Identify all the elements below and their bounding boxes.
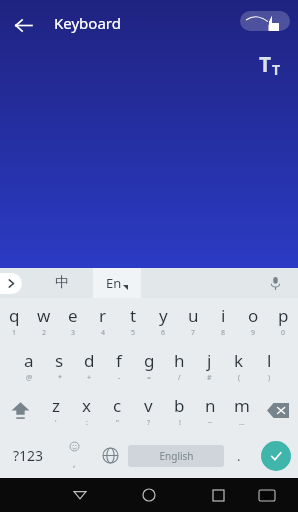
staticText: k — [234, 349, 244, 372]
button[interactable]: y — [148, 298, 178, 343]
button[interactable]: c — [102, 388, 133, 433]
staticText: d — [84, 349, 95, 372]
button[interactable]: Home — [129, 478, 169, 512]
staticText: ) — [268, 373, 271, 383]
staticText: T — [272, 60, 281, 79]
button[interactable]: b — [164, 388, 195, 433]
button[interactable]: h — [164, 343, 194, 388]
button[interactable]: m — [226, 388, 257, 433]
staticText: g — [144, 349, 155, 372]
staticText: + — [87, 373, 92, 383]
staticText: v — [144, 394, 153, 417]
button[interactable]: e — [58, 298, 88, 343]
button[interactable]: English — [128, 445, 224, 467]
button[interactable]: l — [254, 343, 284, 388]
staticText: z — [52, 394, 60, 417]
button[interactable]: 中 — [44, 268, 80, 298]
staticText: ~ — [208, 418, 213, 428]
staticText: 8 — [221, 328, 226, 338]
button[interactable]: d — [74, 343, 104, 388]
staticText: ' — [55, 418, 57, 428]
button[interactable]: . — [224, 433, 254, 478]
staticText: 6 — [161, 328, 166, 338]
button[interactable]: o — [238, 298, 268, 343]
button[interactable]: i — [208, 298, 238, 343]
staticText: a — [24, 349, 34, 372]
button[interactable]: En — [93, 268, 141, 298]
staticText: y — [159, 304, 168, 327]
staticText: # — [207, 373, 212, 383]
staticText: m — [234, 394, 250, 417]
staticText: ! — [179, 418, 181, 428]
staticText: t — [130, 304, 137, 327]
staticText: 3 — [71, 328, 76, 338]
button[interactable]: n — [195, 388, 226, 433]
button[interactable]: ?123 — [0, 433, 56, 478]
staticText: c — [113, 394, 122, 417]
button[interactable]: Keyboard — [252, 478, 282, 512]
staticText: En — [106, 274, 122, 292]
staticText: / — [178, 373, 181, 383]
staticText: 7 — [191, 328, 196, 338]
button[interactable]: t — [118, 298, 148, 343]
button[interactable]: Change language — [92, 433, 128, 478]
staticText: : — [86, 418, 88, 428]
staticText: n — [205, 394, 216, 417]
staticText: * — [58, 373, 62, 383]
staticText: Keyboard — [54, 13, 121, 33]
staticText: j — [207, 349, 212, 372]
button[interactable]: u — [178, 298, 208, 343]
staticText: ... — [239, 418, 245, 428]
button[interactable]: k — [224, 343, 254, 388]
button[interactable]: z — [41, 388, 71, 433]
button[interactable]: Voice input — [264, 272, 286, 294]
staticText: o — [248, 304, 259, 327]
staticText: " — [116, 418, 119, 428]
button[interactable]: Expand toolbar — [0, 273, 22, 294]
button[interactable]: Backspace — [257, 388, 298, 433]
staticText: b — [174, 394, 185, 417]
staticText: . — [237, 447, 241, 465]
staticText: i — [221, 304, 226, 327]
staticText: ( — [238, 373, 241, 383]
button[interactable]: a — [14, 343, 44, 388]
staticText: s — [55, 349, 64, 372]
button[interactable]: j — [194, 343, 224, 388]
button[interactable]: Emoji — [56, 433, 92, 478]
button[interactable]: Back — [8, 10, 38, 40]
staticText: @ — [26, 373, 33, 383]
button[interactable]: Recents — [198, 478, 238, 512]
staticText: q — [9, 304, 20, 327]
button[interactable]: q — [0, 298, 29, 343]
staticText: 5 — [131, 328, 136, 338]
staticText: x — [82, 394, 91, 417]
staticText: w — [37, 304, 51, 327]
button[interactable]: r — [88, 298, 118, 343]
staticText: - — [118, 373, 121, 383]
button[interactable]: v — [133, 388, 164, 433]
button[interactable]: s — [44, 343, 74, 388]
staticText: h — [174, 349, 185, 372]
staticText: T — [259, 50, 272, 79]
button[interactable]: Shift — [0, 388, 41, 433]
button[interactable]: p — [268, 298, 298, 343]
staticText: 中 — [55, 274, 69, 292]
button[interactable]: f — [104, 343, 134, 388]
button[interactable]: w — [29, 298, 58, 343]
staticText: p — [278, 304, 289, 327]
staticText: English — [159, 449, 194, 463]
staticText: ? — [147, 418, 151, 428]
staticText: , — [73, 457, 76, 469]
button[interactable]: Enter — [261, 441, 291, 471]
staticText: u — [188, 304, 199, 327]
staticText: r — [99, 304, 107, 327]
button[interactable]: Text size — [253, 47, 287, 81]
button[interactable]: g — [134, 343, 164, 388]
staticText: f — [116, 349, 122, 372]
staticText: ?123 — [13, 446, 44, 465]
button[interactable]: x — [71, 388, 102, 433]
staticText: 2 — [42, 328, 47, 338]
button[interactable]: Back — [60, 478, 100, 512]
button[interactable]: Glide typing — [240, 11, 290, 31]
staticText: l — [267, 349, 272, 372]
